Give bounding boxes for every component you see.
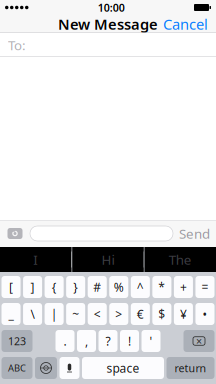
button[interactable]: ' [141,330,160,352]
staticText: * [158,279,165,295]
staticText: % [114,279,124,295]
staticText: | [51,306,58,322]
staticText: _ [8,306,13,322]
staticText: $ [158,306,165,322]
staticText: ? [105,333,110,349]
staticText: [ [9,279,13,295]
staticText: Cancel [163,14,208,34]
staticText: ! [128,333,131,349]
button[interactable]: , [77,330,96,352]
button[interactable]: \ [23,303,42,325]
button[interactable]: • [195,303,214,325]
button[interactable]: I [0,247,71,272]
button[interactable]: $ [152,303,171,325]
button[interactable]: The [144,247,216,272]
button[interactable]: ^ [131,276,150,298]
staticText: ] [31,279,35,295]
staticText: ABC [8,362,26,374]
button[interactable]: > [109,303,128,325]
staticText: Send [179,225,210,242]
staticText: ¥ [180,306,187,322]
button[interactable]: ] [23,276,42,298]
button[interactable]: = [195,276,214,298]
button[interactable]: + [174,276,193,298]
button[interactable]: ! [120,330,139,352]
button[interactable]: Cancel [157,10,214,38]
button[interactable]: return [166,357,214,379]
button[interactable]: # [88,276,107,298]
staticText: return [174,361,206,375]
button[interactable]: Dictate [59,357,79,379]
staticText: , [85,333,88,349]
staticText: New Message [58,14,158,34]
button[interactable]: Take photo or video [6,224,24,242]
button[interactable]: ? [98,330,117,352]
button[interactable]: € [131,303,150,325]
staticText: + [180,279,187,295]
staticText: • [202,306,207,322]
staticText: { [52,279,57,295]
button[interactable]: . [55,330,74,352]
button[interactable]: % [109,276,128,298]
staticText: space [106,360,139,376]
button[interactable]: [ [1,276,20,298]
button[interactable]: ~ [66,303,85,325]
button[interactable]: space [82,357,164,379]
button[interactable]: To: [0,33,216,57]
staticText: Hi [101,251,114,268]
button[interactable]: 123 [1,330,32,352]
staticText: \ [31,306,35,322]
staticText: I [33,251,38,268]
button[interactable]: Hi [72,247,144,272]
staticText: 10:00 [98,0,125,15]
button[interactable]: | [45,303,64,325]
button[interactable]: < [88,303,107,325]
staticText: To: [8,36,26,54]
staticText: ^ [137,279,144,295]
staticText: # [93,279,101,295]
staticText: € [137,306,144,322]
button[interactable]: Next keyboard [35,357,57,379]
button[interactable]: Delete [183,330,214,352]
staticText: 123 [8,334,26,348]
button[interactable]: Send [179,225,210,242]
staticText: The [169,251,192,268]
staticText: ~ [72,306,79,322]
staticText: < [94,306,101,322]
button[interactable]: ¥ [174,303,193,325]
button[interactable]: _ [1,303,20,325]
staticText: . [63,333,66,349]
button[interactable]: ABC [1,357,32,379]
staticText: } [73,279,78,295]
staticText: > [115,306,122,322]
staticText: ' [149,333,152,349]
button[interactable]: } [66,276,85,298]
button[interactable]: { [45,276,64,298]
button[interactable]: * [152,276,171,298]
staticText: = [201,279,208,295]
staticText: × [196,334,202,348]
